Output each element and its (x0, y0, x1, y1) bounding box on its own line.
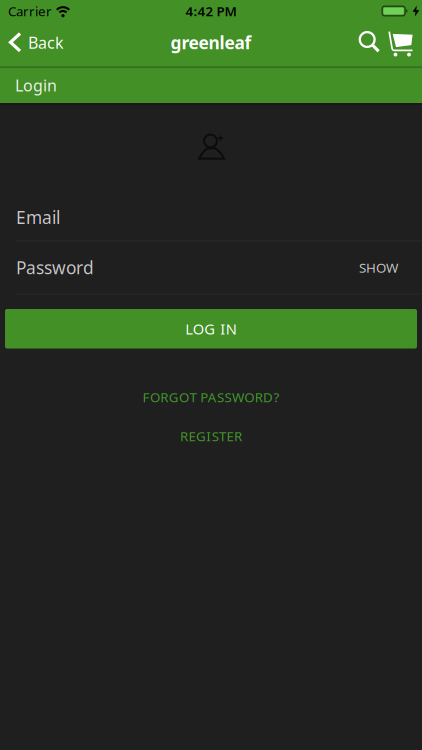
button[interactable]: Search (355, 20, 382, 64)
button[interactable]: REGISTER (180, 426, 242, 446)
button[interactable]: Back (0, 22, 64, 63)
staticText: LOG IN (185, 319, 237, 338)
staticText: Login (15, 75, 57, 96)
staticText: greenleaf (170, 31, 251, 54)
button[interactable]: LOG IN (5, 309, 417, 348)
staticText: REGISTER (180, 427, 242, 445)
staticText: Carrier (8, 2, 52, 20)
staticText: 4:42 PM (185, 2, 236, 20)
button[interactable]: Password (0, 241, 359, 293)
staticText: Password (16, 256, 94, 279)
staticText: Back (28, 32, 64, 53)
button[interactable]: FORGOT PASSWORD? (142, 387, 279, 407)
button[interactable]: Cart (382, 20, 422, 65)
staticText: SHOW (359, 259, 398, 276)
button[interactable]: Email (0, 194, 422, 240)
staticText: FORGOT PASSWORD? (142, 388, 279, 406)
button[interactable]: SHOW (359, 241, 422, 293)
staticText: Email (16, 206, 60, 229)
